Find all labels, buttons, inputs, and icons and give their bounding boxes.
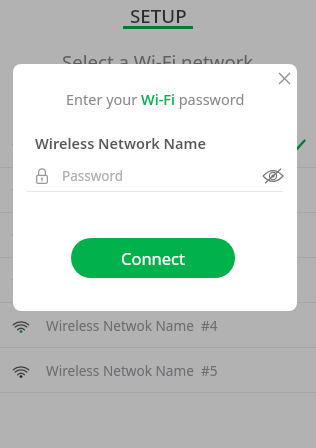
- staticText: Connect: [121, 247, 185, 269]
- staticText: #5: [201, 361, 218, 380]
- staticText: #2: [201, 226, 218, 245]
- staticText: Select a Wi-Fi network: [62, 49, 254, 74]
- staticText: Wireless Netwok Name: [46, 226, 194, 245]
- button[interactable]: Connect: [71, 238, 235, 278]
- staticText: Wireless Network Name: [35, 133, 206, 153]
- staticText: Enter your Wi-Fi password: [66, 89, 245, 109]
- button[interactable]: Wireless Netwok Name: [0, 258, 316, 303]
- button[interactable]: Close: [270, 64, 297, 92]
- staticText: Wireless Netwok Name: [46, 271, 194, 290]
- staticText: Wireless Netwok Name: [46, 361, 194, 380]
- button[interactable]: Wireless Netwok Name: [0, 168, 316, 213]
- button[interactable]: Show password: [262, 165, 284, 187]
- staticText: Wireless Netwok Name: [46, 316, 194, 335]
- staticText: Wireless Netwok Name: [46, 181, 194, 200]
- staticText: Password: [62, 167, 124, 185]
- staticText: #1: [201, 181, 218, 200]
- button[interactable]: Wireless Netwok Name: [0, 213, 316, 258]
- button[interactable]: Wireless Netwok Name: [0, 348, 316, 393]
- staticText: Wireless Netwok Name: [46, 136, 194, 155]
- button[interactable]: Wireless Netwok Name: [0, 303, 316, 348]
- button[interactable]: Wireless Netwok Name: [0, 123, 316, 168]
- staticText: #3: [201, 271, 218, 290]
- staticText: SETUP: [130, 3, 187, 29]
- staticText: #4: [201, 316, 218, 335]
